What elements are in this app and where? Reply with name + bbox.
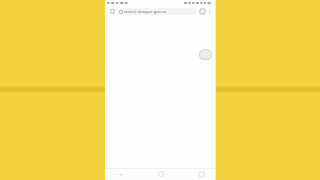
staticText: xtvxv2.itaegue.gov.co — [124, 9, 167, 15]
button[interactable]: Recent apps — [196, 170, 206, 178]
button[interactable]: More options — [206, 8, 213, 15]
button[interactable]: xtvxv2.itaegue.gov.co — [117, 8, 197, 15]
button[interactable]: Tabs — [198, 7, 206, 15]
button[interactable]: Home — [156, 170, 166, 178]
button[interactable]: Back — [115, 170, 125, 178]
button[interactable]: Page element — [199, 49, 212, 60]
button[interactable]: Reload — [108, 7, 116, 15]
